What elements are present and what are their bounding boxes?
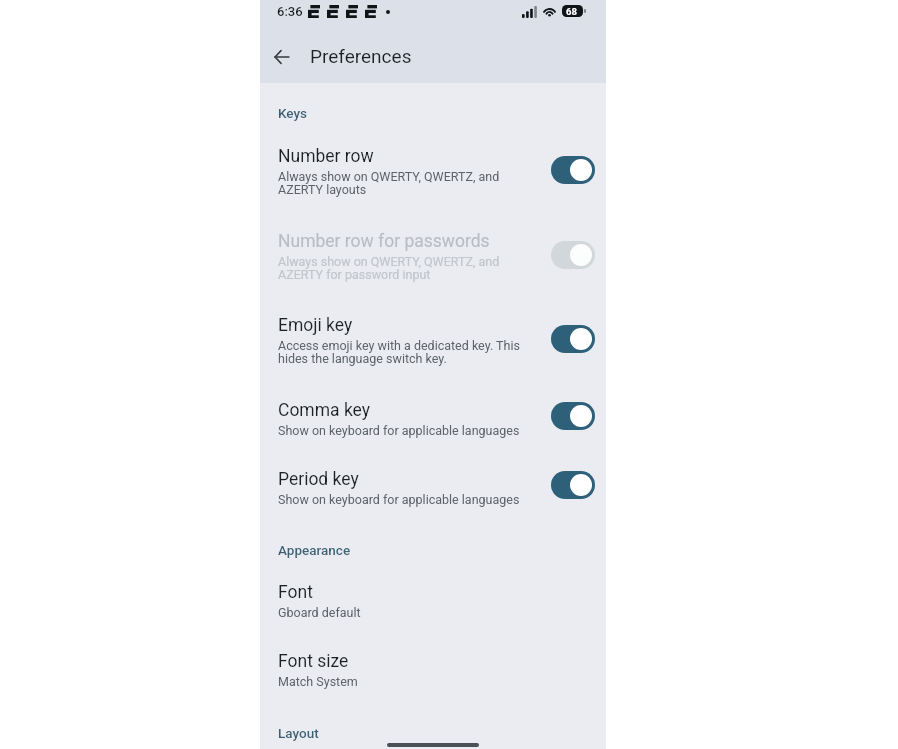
staticText: Font [278, 582, 313, 603]
staticText: Always show on QWERTY, QWERTZ, and AZERT… [278, 256, 500, 282]
staticText: Number row [278, 146, 374, 167]
button[interactable]: Comma key [551, 402, 595, 430]
button[interactable]: Number row [551, 156, 595, 184]
button[interactable]: Number row for passwords [260, 224, 606, 286]
staticText: Keys [278, 105, 308, 121]
staticText: Emoji key [278, 315, 353, 336]
staticText: Layout [278, 725, 319, 741]
button[interactable]: Period key [260, 462, 606, 510]
staticText: Comma key [278, 400, 371, 421]
staticText: Show on keyboard for applicable language… [278, 494, 520, 507]
staticText: Always show on QWERTY, QWERTZ, and AZERT… [278, 171, 500, 197]
button[interactable]: Period key [551, 471, 595, 499]
staticText: Appearance [278, 542, 351, 558]
staticText: Match System [278, 676, 358, 689]
staticText: Font size [278, 651, 349, 672]
staticText: 68 [566, 6, 577, 17]
button[interactable]: Emoji key [551, 325, 595, 353]
staticText: Period key [278, 469, 359, 490]
staticText: Gboard default [278, 607, 361, 620]
button[interactable]: Font [260, 575, 606, 623]
button[interactable]: Back [262, 37, 302, 77]
button[interactable]: Number row [260, 139, 606, 201]
staticText: Number row for passwords [278, 231, 490, 252]
button[interactable]: Font size [260, 644, 606, 692]
staticText: 6:36 [277, 4, 303, 19]
staticText: Preferences [310, 45, 412, 67]
button[interactable]: Number row for passwords [551, 241, 595, 269]
staticText: Show on keyboard for applicable language… [278, 425, 520, 438]
staticText: Access emoji key with a dedicated key. T… [278, 340, 520, 366]
button[interactable]: Emoji key [260, 308, 606, 370]
button[interactable]: Comma key [260, 393, 606, 441]
